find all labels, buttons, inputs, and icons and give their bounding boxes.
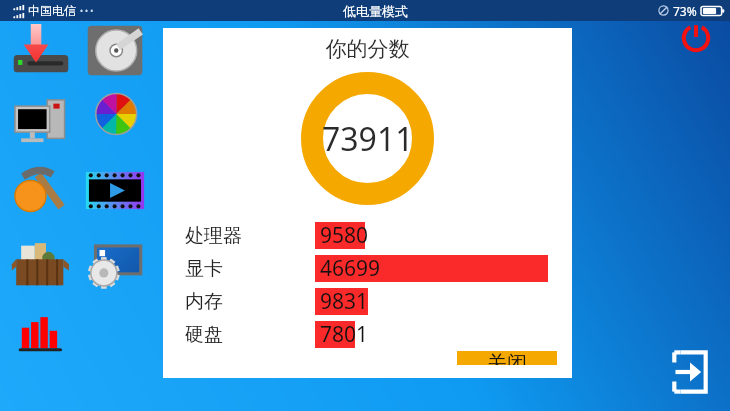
staticText: 9580 xyxy=(320,221,369,250)
staticText: 内存 xyxy=(185,290,223,314)
staticText: 73911 xyxy=(322,117,414,161)
button[interactable]: Computer xyxy=(10,90,72,152)
button[interactable]: Settings xyxy=(84,232,146,294)
button[interactable]: RGB xyxy=(84,88,146,150)
button[interactable]: Install xyxy=(10,24,72,86)
staticText: 46699 xyxy=(320,254,381,283)
button[interactable]: Video xyxy=(84,162,146,224)
button[interactable]: Power off xyxy=(678,20,714,56)
staticText: 关闭 xyxy=(487,351,527,365)
staticText: 显卡 xyxy=(185,257,223,281)
button[interactable]: Exit xyxy=(662,344,718,400)
staticText: 处理器 xyxy=(185,224,242,248)
staticText: 硬盘 xyxy=(185,323,223,347)
button[interactable]: Crate xyxy=(10,232,72,294)
staticText: 7801 xyxy=(320,320,369,349)
staticText: 中国电信 xyxy=(28,3,76,18)
staticText: 你的分数 xyxy=(163,36,572,62)
button[interactable]: Mining xyxy=(10,160,72,222)
button[interactable]: Benchmark xyxy=(10,306,72,368)
staticText: • • • xyxy=(80,5,94,16)
staticText: 9831 xyxy=(320,287,369,316)
staticText: 低电量模式 xyxy=(343,3,408,19)
staticText: 73% xyxy=(673,3,697,19)
button[interactable]: 关闭 xyxy=(457,351,557,365)
button[interactable]: Disk xyxy=(84,22,146,84)
